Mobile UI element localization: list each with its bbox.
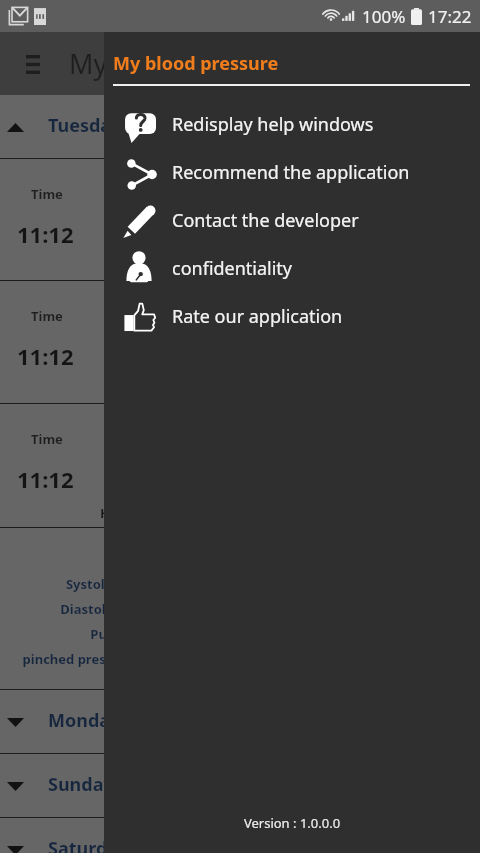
button[interactable]: Open navigation drawer [12, 43, 54, 85]
staticText: Time [31, 430, 63, 448]
staticText: Time [31, 307, 63, 325]
staticText: Monday, 6 January [48, 708, 214, 733]
button[interactable]: Tuesday, 7 January [0, 95, 480, 158]
staticText: My blood pressure [69, 45, 305, 82]
staticText: Contact the developer [172, 208, 359, 233]
button[interactable]: Time [0, 281, 480, 403]
button[interactable]: Monday, 6 January [0, 690, 480, 753]
button[interactable]: Time [0, 404, 480, 527]
button[interactable]: Saturday, 4 January [0, 818, 480, 853]
staticText: Systolic pressure [65, 575, 175, 593]
staticText: Pulse [90, 625, 125, 643]
button[interactable]: Rate our application [104, 292, 480, 340]
staticText: 17:22 [428, 5, 472, 28]
staticText: Time [31, 185, 63, 203]
staticText: confidentiality [172, 256, 293, 281]
staticText: 11:12 [17, 219, 74, 249]
other: Mail notification [9, 7, 28, 25]
button[interactable]: Redisplay help windows [104, 100, 480, 148]
button[interactable]: Recommend the application [104, 148, 480, 196]
button[interactable]: Sunday, 5 January [0, 754, 480, 817]
button[interactable]: Time [0, 159, 480, 280]
staticText: Hide details [100, 504, 177, 522]
other: Battery saver [34, 7, 46, 25]
staticText: pinched pressure [22, 650, 134, 668]
staticText: 100% [362, 5, 406, 28]
staticText: Tuesday, 7 January [48, 113, 215, 138]
staticText: Sunday, 5 January [48, 772, 208, 797]
button[interactable]: Contact the developer [104, 196, 480, 244]
staticText: 11:12 [17, 464, 74, 494]
staticText: Recommend the application [172, 160, 410, 185]
staticText: Version : 1.0.0.0 [104, 814, 480, 832]
staticText: Rate our application [172, 304, 343, 329]
staticText: Diastolic pressure [60, 600, 176, 618]
staticText: My blood pressure [113, 51, 279, 76]
staticText: Saturday, 4 January [48, 836, 222, 853]
staticText: Redisplay help windows [172, 112, 374, 137]
staticText: 11:12 [17, 341, 74, 371]
button[interactable]: confidentiality [104, 244, 480, 292]
